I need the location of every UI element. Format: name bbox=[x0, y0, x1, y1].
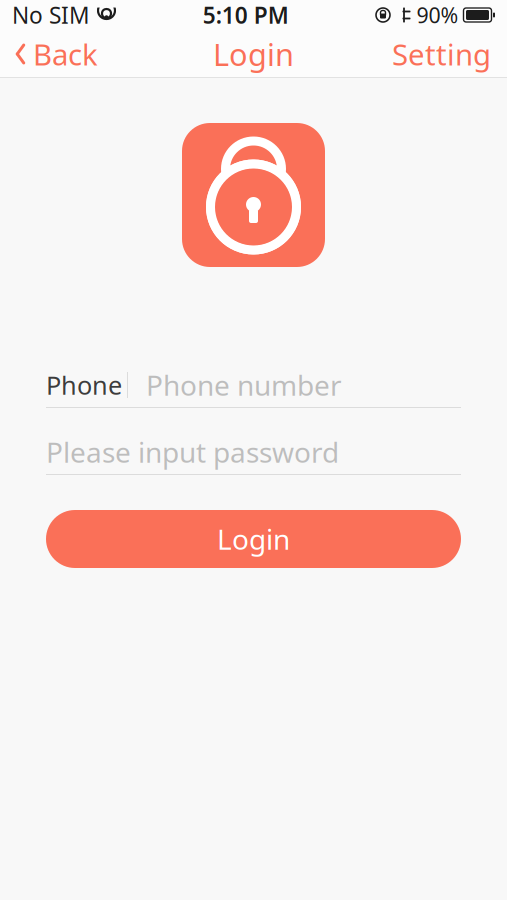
staticText: Back bbox=[33, 34, 98, 73]
staticText: Setting bbox=[392, 34, 491, 73]
button[interactable]: Login bbox=[46, 510, 461, 568]
staticText: 5:10 PM bbox=[203, 0, 289, 30]
staticText: No SIM bbox=[12, 0, 90, 30]
staticText: Login bbox=[217, 520, 290, 558]
button[interactable]: Setting bbox=[376, 30, 507, 78]
staticText: Login bbox=[213, 34, 294, 74]
button[interactable]: Back bbox=[0, 30, 112, 78]
staticText: 90% bbox=[416, 1, 458, 29]
staticText: Please input password bbox=[46, 433, 339, 471]
staticText: Phone number bbox=[146, 366, 342, 404]
staticText: Phone bbox=[46, 368, 122, 402]
